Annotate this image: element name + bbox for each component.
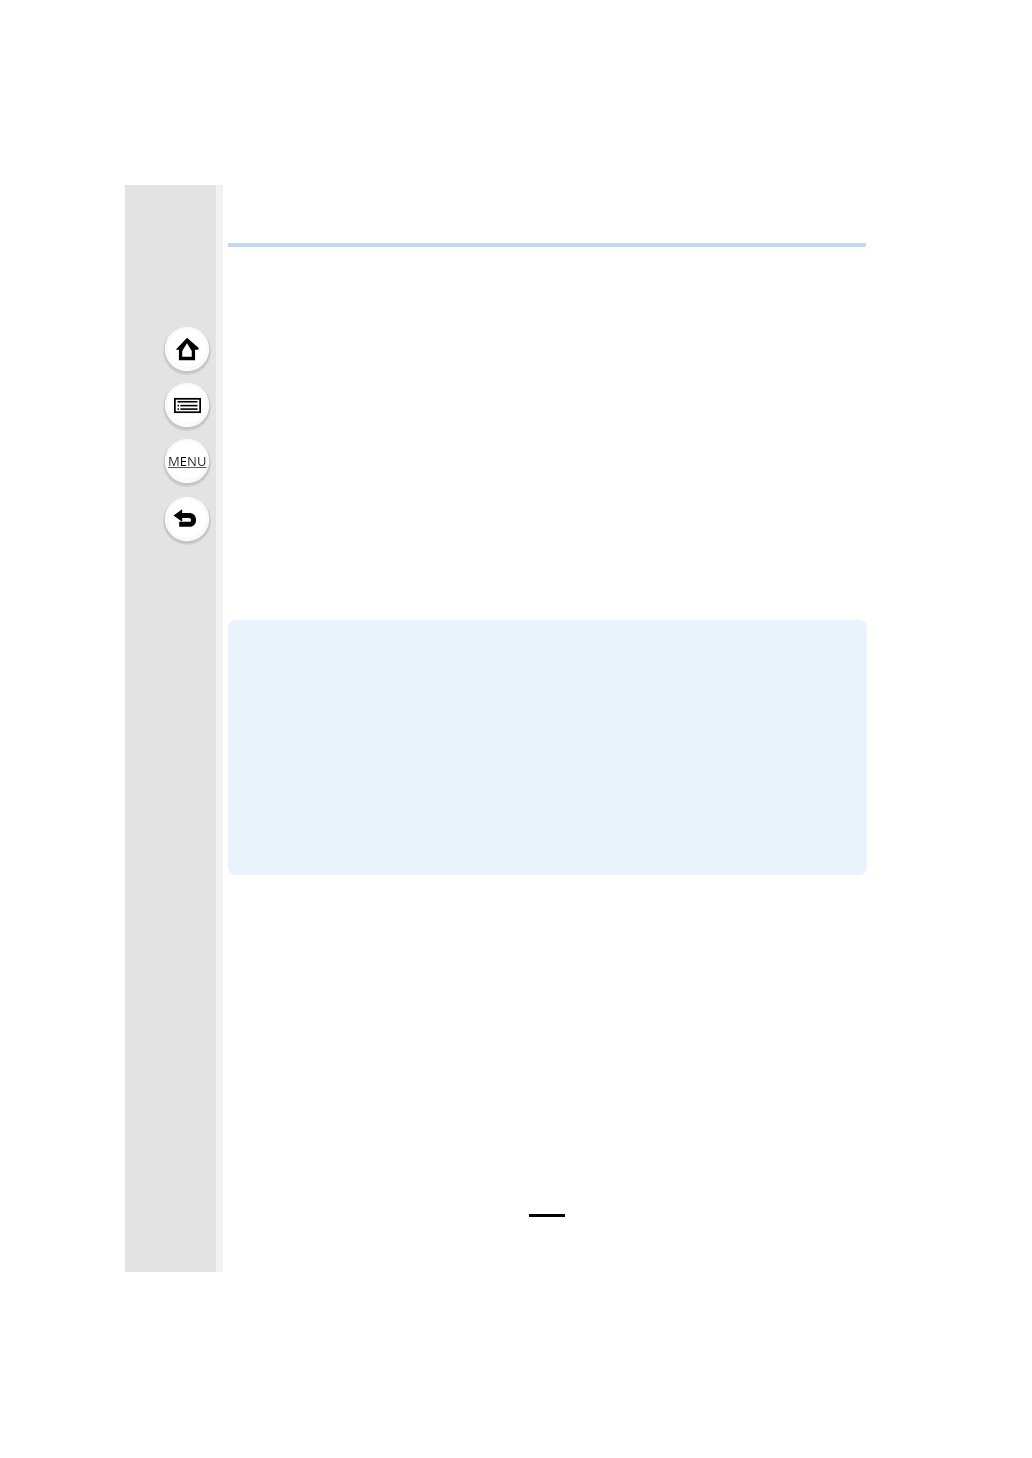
staticText: MENU bbox=[168, 452, 207, 470]
button[interactable]: Back bbox=[163, 495, 211, 543]
button[interactable]: Home bbox=[163, 325, 211, 373]
button[interactable]: Menu bbox=[163, 437, 211, 485]
button[interactable]: Display bbox=[163, 381, 211, 429]
